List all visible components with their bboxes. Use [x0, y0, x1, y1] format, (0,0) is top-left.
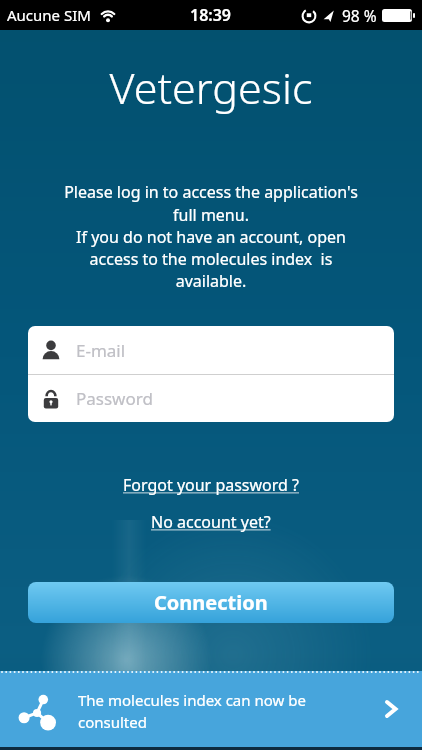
button[interactable]: Password — [28, 375, 394, 422]
button[interactable]: Forgot your password ? — [123, 474, 300, 496]
button[interactable]: E-mail — [28, 326, 394, 374]
staticText: 18:39 — [190, 4, 232, 26]
staticText: The molecules index can now be consulted — [78, 690, 384, 732]
staticText: Password — [76, 387, 153, 410]
staticText: Please log in to access the application'… — [0, 181, 422, 291]
staticText: Connection — [154, 589, 268, 616]
staticText: 98 % — [342, 5, 377, 26]
button[interactable]: No account yet? — [151, 511, 271, 533]
button[interactable]: The molecules index can now be consulted — [0, 671, 422, 747]
staticText: Aucune SIM — [7, 5, 91, 25]
staticText: E-mail — [76, 339, 126, 362]
button[interactable]: Connection — [28, 582, 394, 623]
staticText: Vetergesic — [0, 58, 422, 117]
